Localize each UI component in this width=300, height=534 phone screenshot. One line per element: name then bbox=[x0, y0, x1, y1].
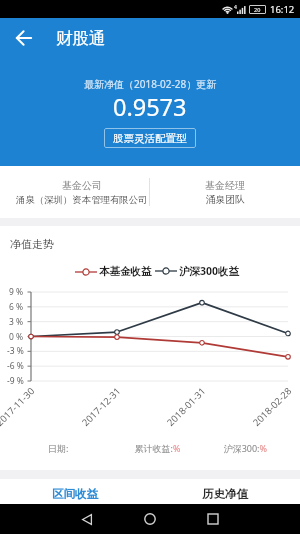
staticText: 股票灵活配置型 bbox=[113, 132, 187, 145]
staticText: 基金公司 bbox=[62, 179, 102, 192]
staticText: 累计收益:% bbox=[121, 442, 194, 454]
button[interactable]: 历史净值 bbox=[150, 479, 300, 504]
staticText: 20 bbox=[254, 6, 261, 13]
staticText: 沪深300:% bbox=[194, 442, 267, 454]
staticText: 区间收益 bbox=[52, 487, 98, 501]
button[interactable]: Recents bbox=[198, 504, 228, 534]
staticText: 16:12 bbox=[270, 3, 295, 16]
staticText: 日期: bbox=[48, 442, 121, 454]
button[interactable]: Back bbox=[4, 18, 44, 58]
staticText: 基金经理 bbox=[205, 179, 245, 192]
staticText: 本基金收益 bbox=[99, 265, 152, 278]
button[interactable]: Home bbox=[135, 504, 165, 534]
button[interactable]: Back bbox=[72, 504, 102, 534]
staticText: 净值走势 bbox=[10, 237, 54, 251]
staticText: 0.9573 bbox=[113, 91, 187, 123]
staticText: 4 bbox=[234, 4, 237, 11]
staticText: 最新净值（2018-02-28）更新 bbox=[84, 77, 217, 91]
button[interactable]: 股票灵活配置型 bbox=[104, 128, 196, 148]
staticText: 涌泉（深圳）资本管理有限公司 bbox=[16, 194, 148, 206]
staticText: 财股通 bbox=[56, 28, 106, 49]
staticText: 沪深300收益 bbox=[179, 264, 240, 278]
staticText: 涌泉团队 bbox=[206, 194, 245, 206]
staticText: 历史净值 bbox=[202, 487, 248, 501]
button[interactable]: 区间收益 bbox=[0, 479, 150, 504]
